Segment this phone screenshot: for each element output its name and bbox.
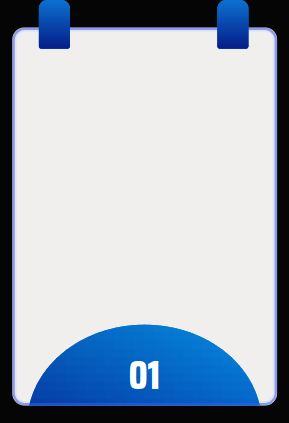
staticText: 01 [128,343,160,406]
